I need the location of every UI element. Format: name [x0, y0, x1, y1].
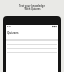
staticText: 9:41 — [7, 25, 11, 28]
staticText: Quizzes — [7, 31, 19, 35]
button[interactable] — [7, 44, 57, 46]
staticText: Test your knowledge — [19, 4, 45, 7]
button[interactable] — [7, 52, 57, 54]
staticText: With Quizzes — [24, 7, 41, 10]
button[interactable] — [7, 48, 57, 50]
staticText: ●●● — [52, 25, 57, 27]
